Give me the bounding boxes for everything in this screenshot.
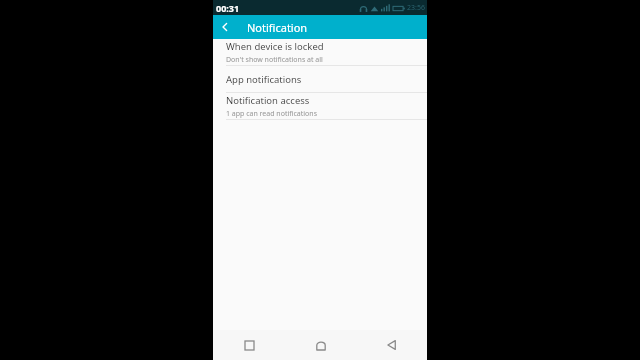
staticText: 23:56 xyxy=(407,3,425,13)
button[interactable]: Notification access xyxy=(213,93,427,119)
staticText: 1 app can read notifications xyxy=(226,109,318,119)
button[interactable]: Back xyxy=(213,15,237,39)
button[interactable]: App notifications xyxy=(213,66,427,92)
button[interactable]: When device is locked xyxy=(213,39,427,65)
staticText: App notifications xyxy=(226,73,302,86)
staticText: Notification access xyxy=(226,94,310,107)
staticText: Notification xyxy=(247,20,308,35)
button[interactable]: Back xyxy=(356,330,427,360)
staticText: When device is locked xyxy=(226,40,324,53)
staticText: 00:31 xyxy=(216,2,240,14)
button[interactable]: Recents xyxy=(213,330,285,360)
button[interactable]: Home xyxy=(285,330,356,360)
staticText: Don't show notifications at all xyxy=(226,55,323,65)
